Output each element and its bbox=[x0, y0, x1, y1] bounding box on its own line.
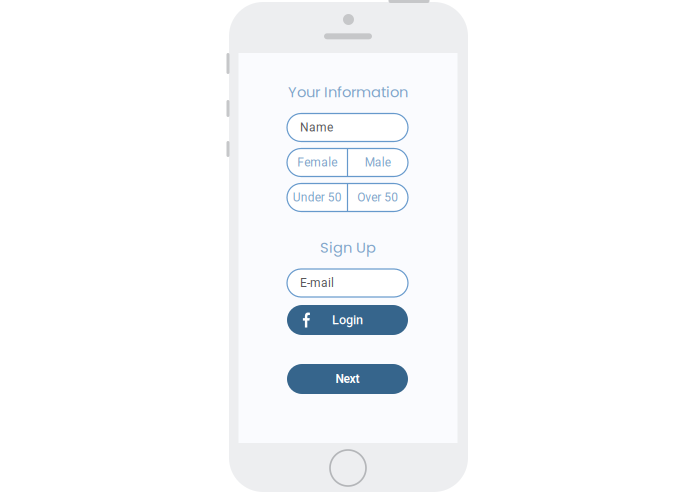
button[interactable]: Next bbox=[287, 364, 408, 394]
staticText: Sign Up bbox=[320, 237, 376, 258]
button[interactable]: Login bbox=[287, 305, 408, 335]
staticText: Next bbox=[335, 372, 359, 386]
staticText: Login bbox=[332, 313, 363, 327]
button[interactable]: E-mail bbox=[287, 269, 408, 297]
button[interactable]: Over 50 bbox=[347, 183, 408, 211]
staticText: Over 50 bbox=[357, 190, 398, 205]
staticText: Your Information bbox=[288, 82, 408, 102]
staticText: Female bbox=[297, 155, 337, 170]
button[interactable]: Under 50 bbox=[287, 183, 347, 211]
staticText: Under 50 bbox=[293, 190, 342, 205]
button[interactable]: Name bbox=[287, 113, 408, 141]
staticText: E-mail bbox=[300, 276, 334, 290]
staticText: Male bbox=[365, 155, 391, 170]
button[interactable]: Male bbox=[347, 148, 408, 176]
button[interactable]: Female bbox=[287, 148, 347, 176]
staticText: Name bbox=[300, 120, 333, 135]
